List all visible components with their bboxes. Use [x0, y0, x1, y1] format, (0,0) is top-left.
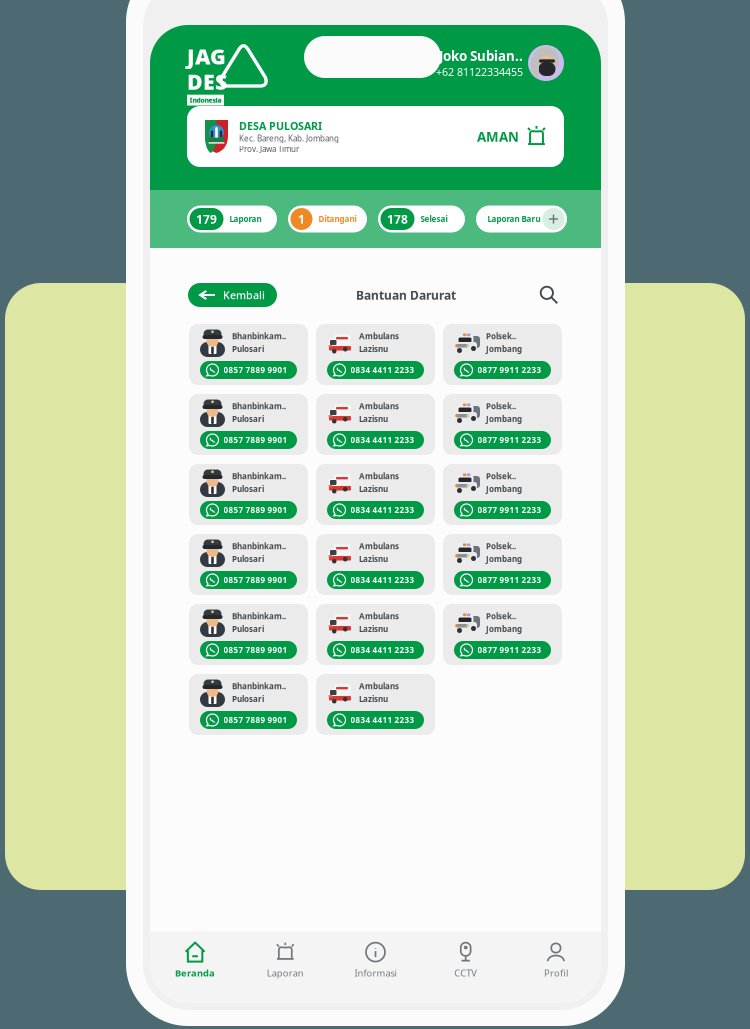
staticText: Laporan	[229, 214, 261, 224]
staticText: Polsek..	[486, 331, 516, 341]
staticText: 0877 9911 2233	[477, 365, 541, 375]
staticText: Ambulans	[359, 331, 399, 341]
button[interactable]: Profil	[511, 943, 601, 979]
staticText: 0877 9911 2233	[477, 505, 541, 515]
staticText: 0877 9911 2233	[477, 645, 541, 655]
staticText: Ditangani	[318, 214, 356, 224]
staticText: 0834 4411 2233	[350, 645, 414, 655]
staticText: CCTV	[454, 967, 477, 979]
button[interactable]: Polsek..	[443, 324, 562, 385]
staticText: 0857 7889 9901	[223, 715, 287, 725]
staticText: Polsek..	[486, 471, 516, 481]
button[interactable]: Kembali	[188, 283, 277, 307]
button[interactable]: Polsek..	[443, 394, 562, 455]
staticText: Lazisnu	[359, 693, 388, 704]
staticText: Kec. Bareng, Kab. Jombang	[239, 133, 339, 144]
staticText: Polsek..	[486, 541, 516, 551]
staticText: 178	[387, 211, 408, 227]
staticText: 179	[196, 211, 217, 227]
button[interactable]: Bhanbinkam..	[189, 394, 308, 455]
staticText: Profil	[544, 967, 568, 979]
button[interactable]: Laporan	[240, 943, 330, 979]
staticText: Lazisnu	[359, 623, 388, 634]
button[interactable]: Beranda	[150, 943, 240, 979]
staticText: Lazisnu	[359, 413, 388, 424]
staticText: DES	[187, 67, 227, 96]
staticText: DESA PULOSARI	[239, 119, 322, 133]
button[interactable]: Polsek..	[443, 604, 562, 665]
button[interactable]: Bhanbinkam..	[189, 604, 308, 665]
staticText: Bhanbinkam..	[232, 471, 286, 481]
staticText: Bhanbinkam..	[232, 681, 286, 691]
staticText: Ambulans	[359, 401, 399, 411]
staticText: Lazisnu	[359, 483, 388, 494]
staticText: Pulosari	[232, 693, 264, 704]
staticText: Laporan	[267, 967, 304, 979]
staticText: 0834 4411 2233	[350, 715, 414, 725]
staticText: Jombang	[486, 623, 522, 634]
staticText: Kembali	[223, 288, 265, 302]
staticText: AMAN	[477, 128, 519, 145]
button[interactable]: Ambulans	[316, 604, 435, 665]
staticText: 0857 7889 9901	[223, 575, 287, 585]
staticText: 0857 7889 9901	[223, 645, 287, 655]
staticText: +62 81122334455	[436, 65, 523, 79]
staticText: Jombang	[486, 343, 522, 354]
staticText: Bhanbinkam..	[232, 541, 286, 551]
staticText: Prov. Jawa Timur	[239, 144, 299, 154]
staticText: Ambulans	[359, 471, 399, 481]
staticText: Pulosari	[232, 413, 264, 424]
staticText: Lazisnu	[359, 553, 388, 564]
staticText: Bhanbinkam..	[232, 401, 286, 411]
staticText: 0834 4411 2233	[350, 365, 414, 375]
staticText: Joko Subian..	[439, 47, 523, 65]
staticText: 0857 7889 9901	[223, 505, 287, 515]
staticText: Laporan Baru	[487, 214, 540, 224]
staticText: JAG	[187, 42, 226, 70]
button[interactable]: Ambulans	[316, 324, 435, 385]
staticText: Bhanbinkam..	[232, 611, 286, 621]
staticText: 0877 9911 2233	[477, 575, 541, 585]
staticText: Bhanbinkam..	[232, 331, 286, 341]
staticText: Bantuan Darurat	[356, 287, 456, 303]
staticText: Jombang	[486, 553, 522, 564]
button[interactable]: Ambulans	[316, 534, 435, 595]
button[interactable]: 179	[187, 205, 277, 232]
button[interactable]: Cari	[535, 281, 563, 309]
staticText: Pulosari	[232, 483, 264, 494]
button[interactable]: Bhanbinkam..	[189, 674, 308, 735]
button[interactable]: Polsek..	[443, 464, 562, 525]
button[interactable]: Bhanbinkam..	[189, 324, 308, 385]
button[interactable]: Informasi	[330, 943, 421, 979]
button[interactable]: 1	[288, 205, 367, 232]
staticText: 0857 7889 9901	[223, 365, 287, 375]
staticText: 0877 9911 2233	[477, 435, 541, 445]
staticText: Lazisnu	[359, 343, 388, 354]
button[interactable]: 178	[378, 205, 465, 232]
button[interactable]: CCTV	[421, 943, 511, 979]
staticText: Beranda	[175, 967, 215, 979]
button[interactable]: Ambulans	[316, 464, 435, 525]
staticText: 0834 4411 2233	[350, 435, 414, 445]
staticText: Selesai	[420, 214, 447, 224]
staticText: 0834 4411 2233	[350, 575, 414, 585]
staticText: 0834 4411 2233	[350, 505, 414, 515]
button[interactable]: Laporan Baru	[476, 205, 567, 232]
staticText: Ambulans	[359, 541, 399, 551]
button[interactable]: Bhanbinkam..	[189, 464, 308, 525]
staticText: Pulosari	[232, 623, 264, 634]
button[interactable]: Bhanbinkam..	[189, 534, 308, 595]
staticText: 1	[298, 211, 305, 227]
staticText: Ambulans	[359, 611, 399, 621]
button[interactable]: Ambulans	[316, 394, 435, 455]
staticText: Informasi	[354, 967, 396, 979]
staticText: Ambulans	[359, 681, 399, 691]
staticText: 0857 7889 9901	[223, 435, 287, 445]
staticText: Jombang	[486, 483, 522, 494]
staticText: Pulosari	[232, 343, 264, 354]
staticText: Indonesia	[189, 96, 221, 105]
staticText: Polsek..	[486, 401, 516, 411]
button[interactable]: Ambulans	[316, 674, 435, 735]
staticText: Pulosari	[232, 553, 264, 564]
button[interactable]: Polsek..	[443, 534, 562, 595]
